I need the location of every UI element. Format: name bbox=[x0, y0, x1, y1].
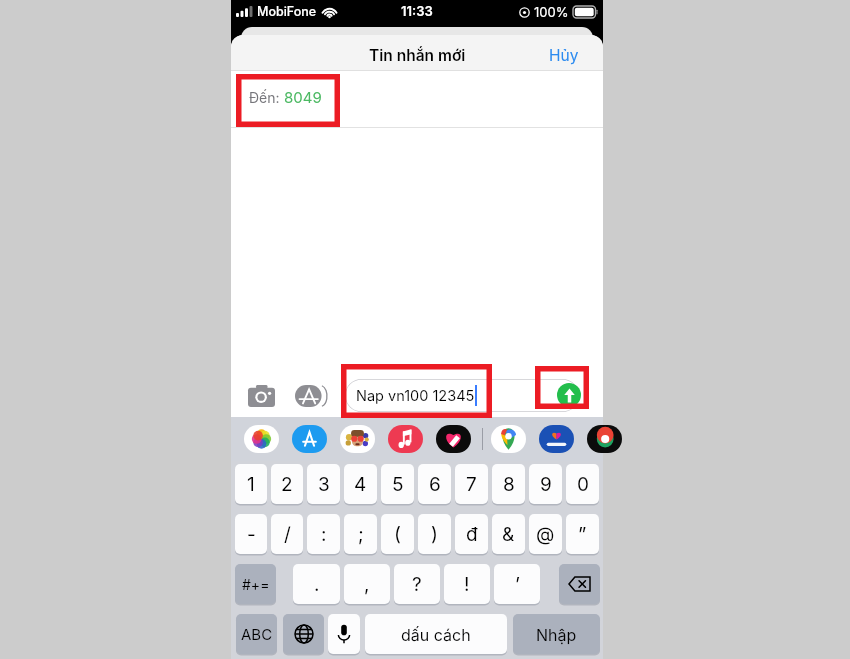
staticText: 100% bbox=[534, 4, 569, 20]
button[interactable]: ; bbox=[344, 514, 377, 554]
button[interactable]: Nhập bbox=[513, 614, 600, 654]
button[interactable]: ) bbox=[418, 514, 451, 554]
button[interactable]: 3 bbox=[307, 464, 340, 504]
button[interactable]: Backspace bbox=[559, 564, 600, 604]
button[interactable]: / bbox=[271, 514, 303, 554]
button[interactable]: ! bbox=[444, 564, 490, 604]
button[interactable]: Photos bbox=[244, 425, 279, 453]
staticText: 9 bbox=[540, 473, 552, 496]
staticText: @ bbox=[536, 523, 555, 546]
button[interactable]: Camera bbox=[248, 385, 275, 407]
button[interactable]: Hủy bbox=[537, 40, 591, 71]
button[interactable]: Send bbox=[557, 383, 581, 407]
button[interactable]: 8 bbox=[492, 464, 525, 504]
staticText: ) bbox=[431, 523, 438, 546]
staticText: 8049 bbox=[284, 88, 322, 106]
button[interactable]: Change keyboard bbox=[283, 614, 324, 654]
staticText: #+= bbox=[242, 576, 270, 593]
button[interactable]: & bbox=[492, 514, 525, 554]
staticText: 2 bbox=[281, 473, 293, 496]
button[interactable]: 9 bbox=[529, 464, 562, 504]
staticText: dấu cách bbox=[401, 625, 471, 644]
staticText: Nhập bbox=[536, 625, 577, 644]
staticText: đ bbox=[466, 523, 478, 546]
button[interactable]: ’ bbox=[494, 564, 540, 604]
staticText: ; bbox=[358, 523, 364, 546]
button[interactable]: 7 bbox=[455, 464, 488, 504]
staticText: ? bbox=[412, 573, 422, 596]
button[interactable]: - bbox=[235, 514, 267, 554]
staticText: : bbox=[321, 523, 327, 546]
staticText: & bbox=[502, 523, 515, 546]
button[interactable]: dấu cách bbox=[365, 614, 507, 654]
staticText: ABC bbox=[241, 625, 273, 643]
staticText: 7 bbox=[466, 473, 477, 496]
staticText: MobiFone bbox=[257, 4, 317, 19]
button[interactable]: Maps bbox=[491, 425, 526, 453]
button[interactable]: 5 bbox=[381, 464, 414, 504]
button[interactable]: : bbox=[307, 514, 340, 554]
staticText: Hủy bbox=[549, 46, 579, 65]
staticText: . bbox=[314, 573, 320, 596]
button[interactable]: Music bbox=[388, 425, 423, 453]
button[interactable]: , bbox=[344, 564, 390, 604]
staticText: Nap vn100 12345 bbox=[356, 387, 475, 405]
staticText: 5 bbox=[392, 473, 404, 496]
button[interactable]: . bbox=[293, 564, 340, 604]
button[interactable]: Lazada bbox=[539, 425, 574, 453]
button[interactable]: ( bbox=[381, 514, 414, 554]
button[interactable]: @ bbox=[529, 514, 562, 554]
button[interactable]: Dictation bbox=[328, 614, 360, 654]
staticText: 11:33 bbox=[401, 3, 433, 19]
button[interactable]: 6 bbox=[418, 464, 451, 504]
staticText: - bbox=[247, 523, 256, 546]
staticText: 3 bbox=[318, 473, 330, 496]
staticText: 6 bbox=[429, 473, 441, 496]
button[interactable]: 2 bbox=[271, 464, 303, 504]
staticText: 1 bbox=[247, 473, 255, 496]
button[interactable]: Nap vn100 12345 bbox=[345, 379, 579, 412]
button[interactable]: đ bbox=[455, 514, 488, 554]
staticText: 4 bbox=[354, 473, 367, 496]
staticText: Tin nhắn mới bbox=[369, 46, 466, 65]
staticText: ! bbox=[464, 573, 470, 596]
button[interactable]: App Store bbox=[295, 385, 327, 407]
button[interactable]: 1 bbox=[235, 464, 267, 504]
button[interactable]: App Store bbox=[292, 425, 327, 453]
button[interactable]: ” bbox=[566, 514, 599, 554]
button[interactable]: 0 bbox=[566, 464, 599, 504]
staticText: ( bbox=[394, 523, 401, 546]
button[interactable]: ? bbox=[394, 564, 440, 604]
staticText: Đến: bbox=[249, 89, 284, 106]
staticText: 8 bbox=[503, 473, 515, 496]
button[interactable]: 4 bbox=[344, 464, 377, 504]
button[interactable]: Fitness bbox=[436, 425, 471, 453]
staticText: ” bbox=[578, 523, 587, 546]
button[interactable]: #+= bbox=[235, 564, 276, 604]
staticText: , bbox=[364, 573, 370, 596]
button[interactable]: ABC bbox=[236, 614, 277, 654]
button[interactable]: Memoji bbox=[340, 425, 375, 453]
button[interactable]: Browser bbox=[587, 425, 622, 453]
staticText: 0 bbox=[577, 473, 589, 496]
staticText: / bbox=[284, 523, 291, 546]
staticText: ’ bbox=[515, 573, 520, 596]
